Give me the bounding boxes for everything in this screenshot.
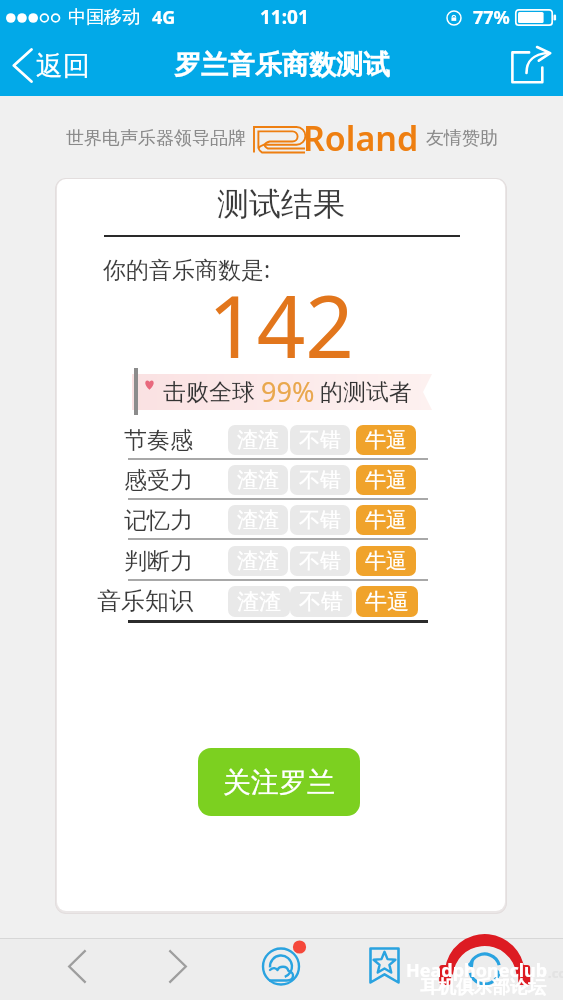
staticText: 渣渣	[237, 507, 279, 533]
staticText: .com	[548, 964, 563, 982]
staticText: 渣渣	[237, 548, 279, 574]
button[interactable]: 不错	[290, 465, 350, 495]
button[interactable]: 关注罗兰	[198, 748, 360, 816]
button[interactable]: 返回	[0, 42, 104, 89]
button[interactable]: 感受力	[97, 460, 193, 500]
staticText: 不错	[299, 588, 343, 616]
staticText: 渣渣	[237, 588, 281, 616]
button[interactable]: Bookmark	[358, 940, 410, 992]
staticText: 牛逼	[365, 467, 407, 493]
button[interactable]: 渣渣	[228, 505, 288, 535]
button[interactable]: Back	[53, 942, 101, 990]
staticText: 渣渣	[237, 467, 279, 493]
staticText: Roland	[303, 115, 419, 161]
button[interactable]: 牛逼	[356, 546, 416, 576]
button[interactable]: 音乐知识	[97, 581, 193, 621]
staticText: 4G	[152, 5, 176, 30]
staticText: 不错	[299, 548, 341, 574]
button[interactable]: 牛逼	[356, 505, 416, 535]
staticText: 记忆力	[124, 506, 193, 535]
button[interactable]: 记忆力	[97, 500, 193, 540]
staticText: 耳机俱乐部论坛	[420, 976, 546, 999]
button[interactable]: 渣渣	[228, 586, 290, 617]
button[interactable]: 不错	[290, 425, 350, 455]
staticText: 罗兰音乐商数测试	[174, 48, 390, 82]
staticText: 友情赞助	[426, 127, 498, 150]
staticText: 的测试者	[320, 378, 412, 407]
staticText: 返回	[36, 49, 90, 83]
staticText: 牛逼	[365, 507, 407, 533]
staticText: 牛逼	[365, 427, 407, 453]
staticText: 你的音乐商数是:	[103, 253, 271, 284]
button[interactable]: 不错	[290, 586, 352, 617]
staticText: 判断力	[124, 547, 193, 576]
staticText: 142	[57, 267, 505, 383]
button[interactable]: 渣渣	[228, 546, 288, 576]
button[interactable]: 节奏感	[97, 420, 193, 460]
staticText: 不错	[299, 427, 341, 453]
button[interactable]: Share	[494, 41, 563, 89]
staticText: 77%	[473, 5, 510, 30]
staticText: 99%	[261, 373, 315, 409]
staticText: 测试结果	[57, 184, 505, 224]
staticText: 中国移动	[68, 6, 140, 29]
staticText: 感受力	[124, 466, 193, 495]
staticText: 击败全球	[163, 378, 255, 407]
button[interactable]: 渣渣	[228, 465, 288, 495]
staticText: 牛逼	[365, 588, 409, 616]
staticText: 11:01	[260, 4, 309, 30]
staticText: 牛逼	[365, 548, 407, 574]
staticText: 不错	[299, 507, 341, 533]
button[interactable]: 不错	[290, 505, 350, 535]
button[interactable]: 渣渣	[228, 425, 288, 455]
staticText: 不错	[299, 467, 341, 493]
button[interactable]: 牛逼	[356, 465, 416, 495]
staticText: 关注罗兰	[223, 765, 335, 800]
staticText: 世界电声乐器领导品牌	[66, 127, 246, 150]
button[interactable]: 判断力	[97, 541, 193, 581]
staticText: Headphoneclub	[406, 958, 548, 983]
button[interactable]: 不错	[290, 546, 350, 576]
button[interactable]: Forward	[154, 942, 202, 990]
button[interactable]: Discover	[255, 939, 307, 991]
button[interactable]: 牛逼	[356, 586, 418, 617]
staticText: 节奏感	[124, 426, 193, 455]
staticText: 音乐知识	[97, 586, 193, 616]
staticText: 渣渣	[237, 427, 279, 453]
button[interactable]: 牛逼	[356, 425, 416, 455]
